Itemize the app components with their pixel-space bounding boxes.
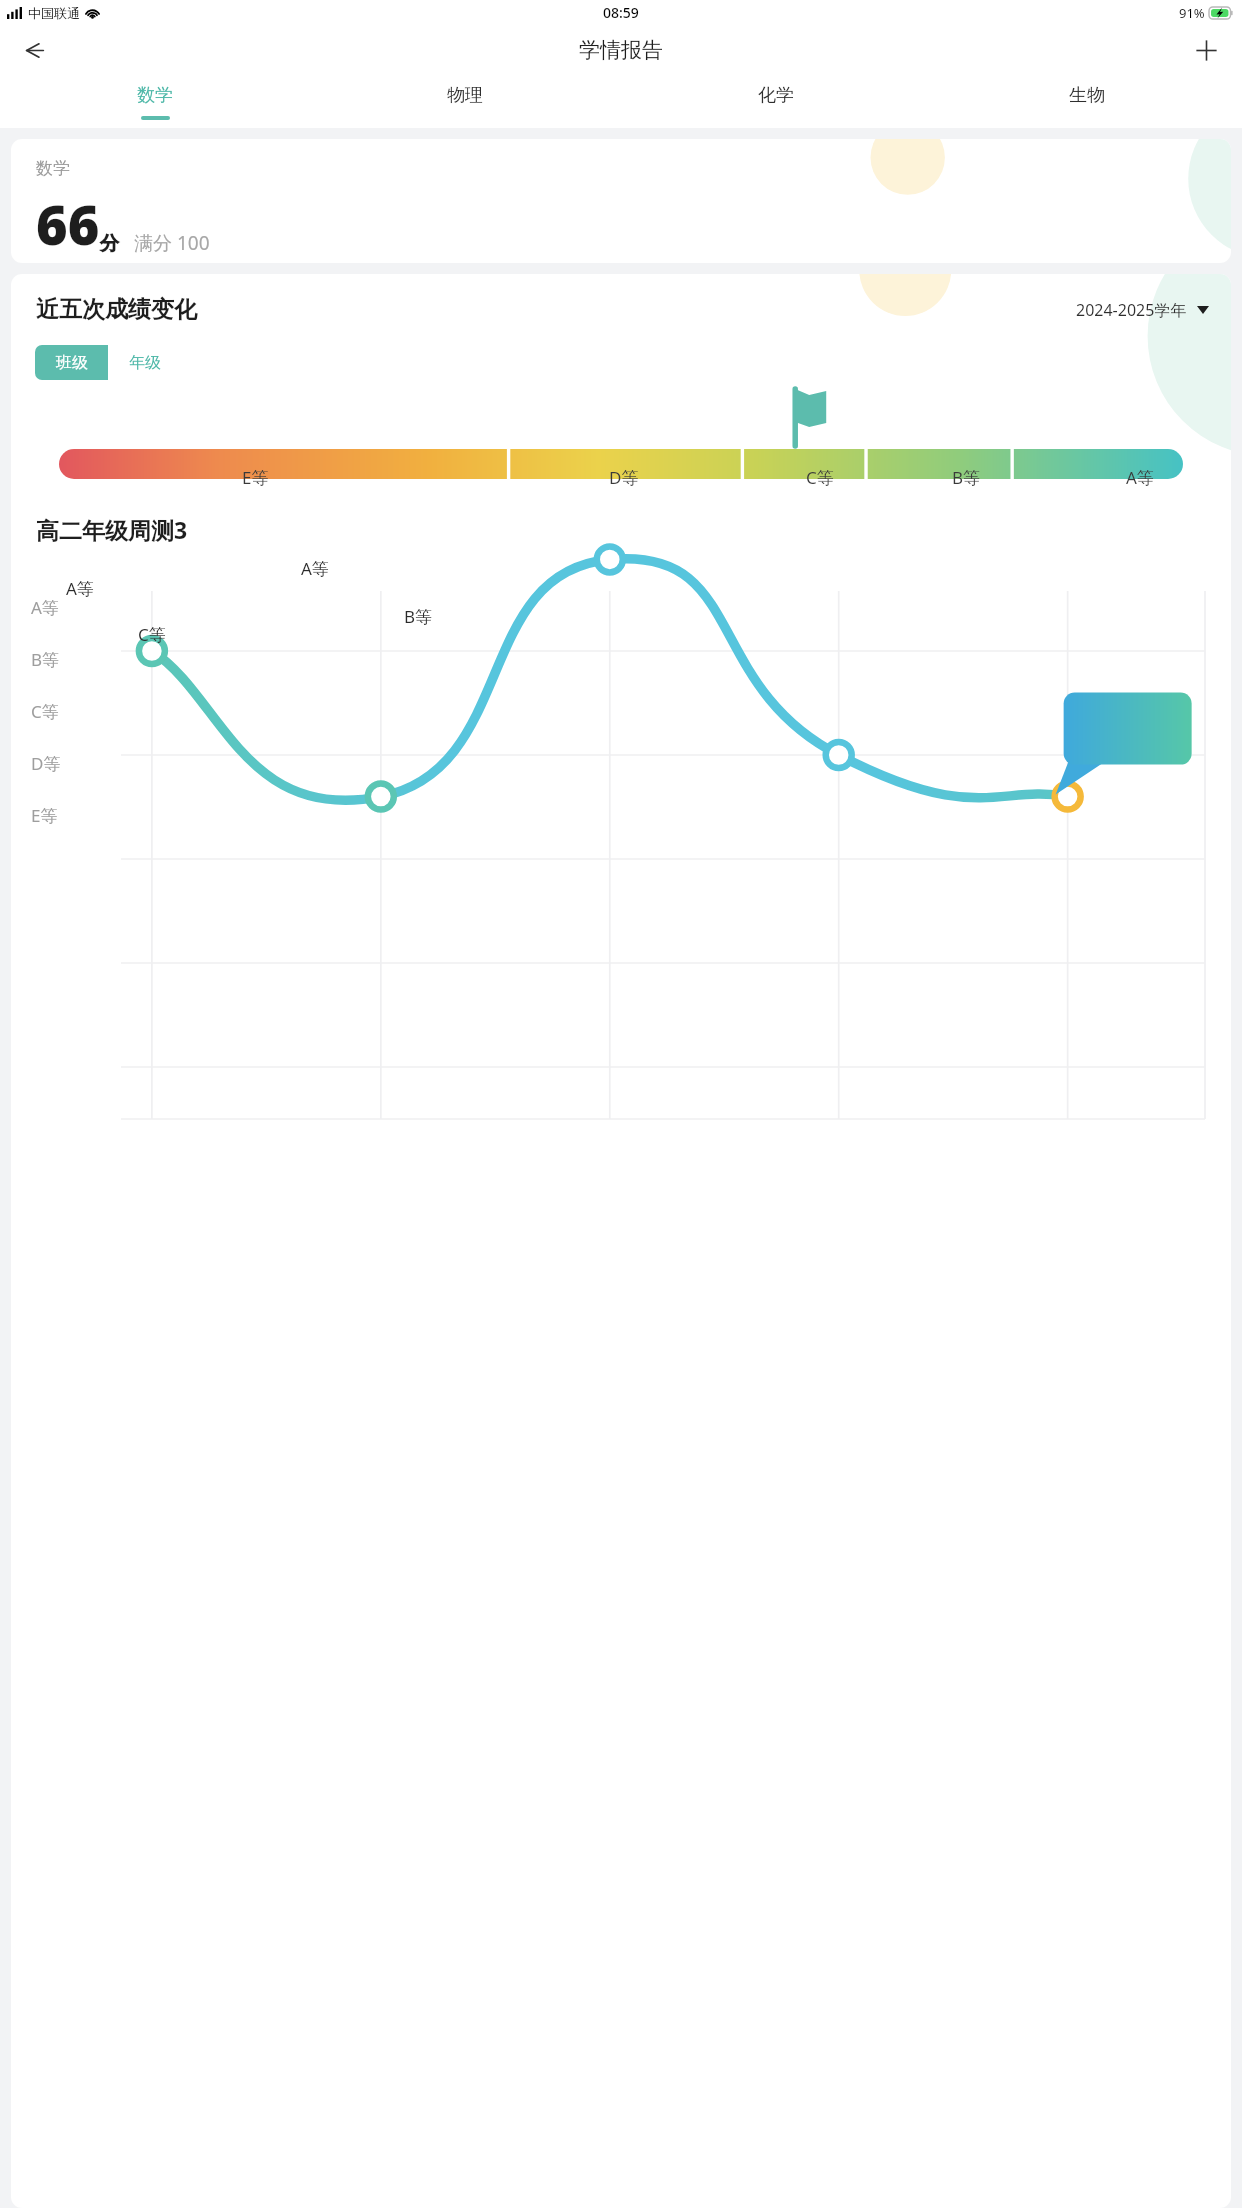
staticText: 近五次成绩变化 xyxy=(36,295,197,324)
button[interactable]: 生物 xyxy=(931,75,1242,128)
staticText: E等 xyxy=(242,466,269,489)
staticText: B等 xyxy=(952,466,981,489)
staticText: 66 xyxy=(36,187,100,261)
button[interactable]: 数学 xyxy=(11,139,1231,263)
staticText: C等 xyxy=(806,466,834,489)
staticText: 数学 xyxy=(36,158,70,179)
button[interactable]: 返回 xyxy=(10,27,56,73)
button[interactable]: 化学 xyxy=(620,75,931,128)
button[interactable]: A等 xyxy=(11,565,1231,960)
staticText: 2024-2025学年 xyxy=(1076,299,1187,321)
staticText: 91% xyxy=(1179,4,1205,22)
staticText: C等 xyxy=(31,700,59,723)
staticText: 化学 xyxy=(758,84,794,107)
staticText: C等 xyxy=(138,623,166,646)
staticText: 生物 xyxy=(1069,84,1105,107)
staticText: D等 xyxy=(609,466,639,489)
button[interactable]: 年级 xyxy=(108,345,181,380)
staticText: A等 xyxy=(31,596,59,619)
button[interactable]: 物理 xyxy=(310,75,620,128)
staticText: 高二年级周测3 xyxy=(36,514,188,545)
staticText: A等 xyxy=(1126,466,1154,489)
staticText: B等 xyxy=(404,605,433,628)
staticText: 物理 xyxy=(447,84,483,107)
staticText: 中国联通 xyxy=(28,5,80,21)
staticText: 班级 xyxy=(56,353,88,373)
staticText: 分 xyxy=(100,232,119,256)
button[interactable]: 数学 xyxy=(0,75,310,128)
button[interactable]: 2024-2025学年 xyxy=(1076,299,1209,321)
staticText: 年级 xyxy=(129,353,161,373)
staticText: D等 xyxy=(31,752,61,775)
staticText: A等 xyxy=(66,577,94,600)
button[interactable]: 班级 xyxy=(35,345,108,380)
button[interactable]: 添加 xyxy=(1183,27,1229,73)
staticText: 数学 xyxy=(137,84,173,107)
button[interactable]: E等 xyxy=(11,406,1231,492)
staticText: 学情报告 xyxy=(579,37,663,63)
staticText: A等 xyxy=(301,557,329,580)
staticText: 08:59 xyxy=(603,3,639,22)
staticText: B等 xyxy=(31,648,60,671)
staticText: 满分 100 xyxy=(134,230,210,256)
staticText: E等 xyxy=(31,804,58,827)
